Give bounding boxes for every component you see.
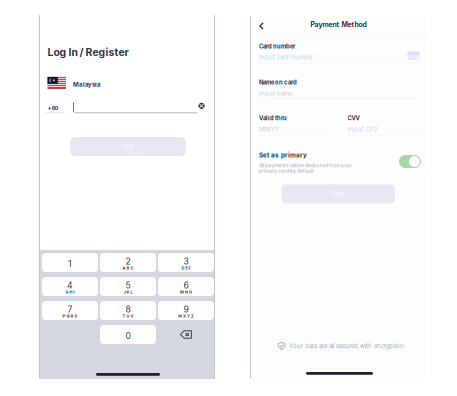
button[interactable]: 1 [42, 253, 98, 272]
staticText: Valid thru [259, 115, 287, 122]
staticText: D E F [181, 266, 190, 270]
staticText: 4 [67, 280, 73, 291]
button[interactable]: Clear [196, 101, 207, 111]
button[interactable]: 2 [100, 253, 156, 272]
staticText: MM/YY [259, 126, 279, 133]
staticText: 3 [183, 256, 188, 267]
staticText: 5 [125, 280, 130, 291]
staticText: M N O [180, 290, 192, 294]
staticText: Save [332, 190, 345, 197]
staticText: All payments will be deducted from your [259, 162, 352, 168]
staticText: 0 [125, 331, 130, 341]
button[interactable]: 7 [42, 301, 98, 320]
staticText: Your data are all secured with encryptio… [289, 342, 406, 350]
staticText: 6 [183, 280, 188, 291]
staticText: Set as primary [259, 151, 307, 159]
staticText: Malaysia [73, 81, 101, 88]
staticText: primary card by default [259, 168, 314, 174]
button[interactable]: Set as primary [399, 155, 421, 168]
button[interactable]: Back [255, 20, 269, 34]
staticText: +60 [48, 105, 59, 111]
button[interactable]: 3 [158, 253, 214, 272]
staticText: 7 [67, 304, 72, 315]
staticText: 9 [183, 304, 188, 315]
button[interactable]: 0 [100, 325, 156, 344]
staticText: Input CVV [347, 126, 377, 133]
button[interactable]: Delete [158, 325, 214, 344]
staticText: Input name [259, 90, 292, 97]
staticText: CVV [347, 115, 359, 122]
staticText: Next [122, 143, 134, 150]
staticText: Log In / Register [47, 46, 128, 59]
button[interactable]: 9 [158, 301, 214, 320]
staticText: P Q R S [62, 314, 77, 318]
button[interactable]: 5 [100, 277, 156, 296]
button[interactable]: 8 [100, 301, 156, 320]
staticText: A B C [122, 266, 133, 270]
staticText: Input card number [259, 54, 313, 61]
button[interactable]: 4 [42, 277, 98, 296]
staticText: G H I [65, 290, 74, 294]
staticText: Card number [259, 43, 295, 50]
staticText: T U V [122, 314, 133, 318]
staticText: W X Y Z [178, 314, 194, 318]
staticText: J K L [123, 290, 132, 294]
staticText: 2 [125, 256, 130, 267]
button[interactable]: 6 [158, 277, 214, 296]
staticText: Payment Method [310, 20, 366, 29]
staticText: 8 [125, 304, 130, 315]
staticText: Name on card [259, 79, 297, 86]
staticText: 1 [68, 259, 72, 269]
